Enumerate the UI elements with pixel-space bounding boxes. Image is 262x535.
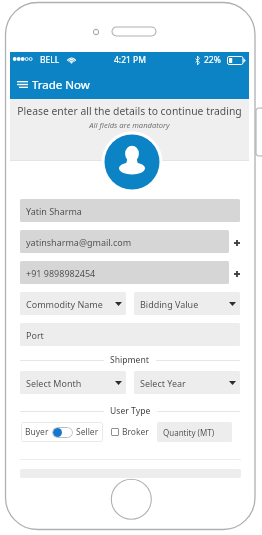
staticText: Commodity Name <box>26 298 103 310</box>
button[interactable]: Broker <box>111 422 149 442</box>
staticText: Broker <box>122 426 149 438</box>
button[interactable]: +91 9898982454 <box>20 261 229 284</box>
staticText: BELL <box>40 54 60 66</box>
staticText: Shipment <box>110 354 150 366</box>
staticText: Trade Now <box>32 77 90 93</box>
staticText: 22% <box>204 54 221 66</box>
button[interactable]: Port <box>20 323 240 346</box>
staticText: Yatin Sharma <box>26 205 82 217</box>
button[interactable]: Select Year <box>134 371 240 394</box>
staticText: Select Year <box>140 377 186 389</box>
button[interactable]: Open navigation menu <box>13 76 31 92</box>
button[interactable]: Select Month <box>20 371 126 394</box>
staticText: yatinsharma@gmail.com <box>26 236 132 248</box>
staticText: Buyer <box>25 426 49 438</box>
button[interactable]: Buyer <box>21 422 103 442</box>
staticText: Bidding Value <box>140 298 199 310</box>
staticText: Seller <box>76 426 99 438</box>
staticText: User Type <box>110 405 151 417</box>
button[interactable]: Bidding Value <box>134 292 240 315</box>
staticText: Select Month <box>26 377 82 389</box>
button[interactable]: Commodity Name <box>20 292 126 315</box>
staticText: Please enter all the details to continue… <box>17 104 242 118</box>
button[interactable]: yatinsharma@gmail.com <box>20 230 229 253</box>
button[interactable]: Yatin Sharma <box>20 199 240 222</box>
staticText: All fields are mandatory <box>89 120 170 130</box>
button[interactable]: Profile picture <box>101 131 163 193</box>
staticText: +91 9898982454 <box>26 267 96 279</box>
staticText: Port <box>26 329 44 341</box>
staticText: 4:21 PM <box>114 54 146 66</box>
staticText: Quantity (MT) <box>163 427 215 438</box>
button[interactable]: Add another <box>228 265 245 282</box>
button[interactable]: Quantity (MT) <box>157 422 232 442</box>
button[interactable]: Add another <box>228 234 245 251</box>
